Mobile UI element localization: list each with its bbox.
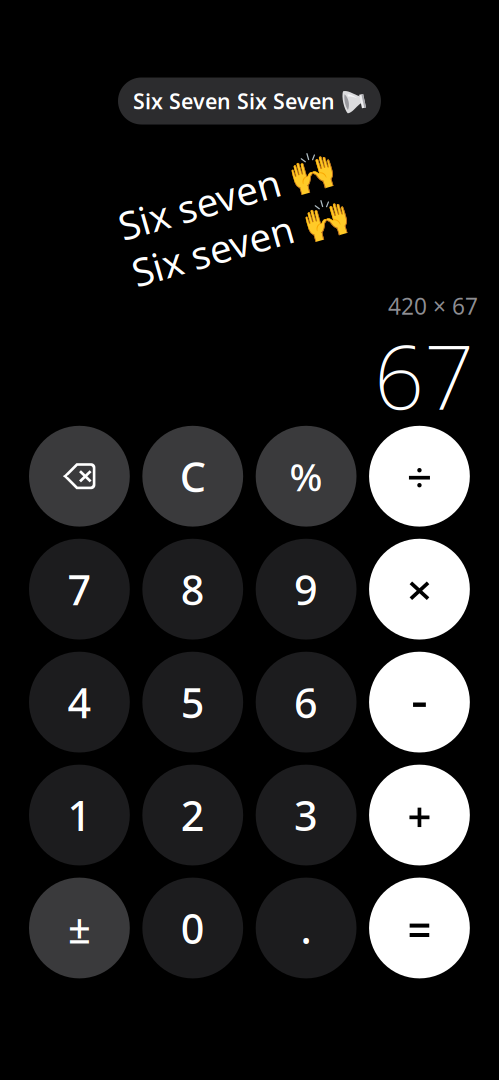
staticText: Six seven 🙌: [121, 217, 346, 269]
staticText: Six seven 🙌: [121, 169, 346, 220]
staticText: 9: [294, 562, 318, 617]
button[interactable]: 6: [256, 652, 356, 752]
button[interactable]: 3: [256, 765, 356, 865]
button[interactable]: Divide: [369, 426, 470, 527]
staticText: .: [301, 901, 312, 955]
staticText: 8: [181, 562, 205, 617]
button[interactable]: 5: [142, 652, 243, 752]
staticText: Six Seven Six Seven: [133, 87, 335, 115]
button[interactable]: C: [142, 426, 243, 527]
staticText: 7: [67, 562, 91, 617]
staticText: 3: [294, 788, 318, 842]
staticText: 0: [181, 901, 205, 955]
staticText: %: [290, 450, 323, 502]
staticText: C: [180, 449, 206, 504]
button[interactable]: Multiply: [369, 539, 470, 640]
button[interactable]: 2: [142, 765, 243, 865]
button[interactable]: %: [256, 426, 356, 527]
staticText: ±: [68, 901, 91, 954]
staticText: 1: [67, 788, 91, 842]
staticText: 6: [294, 675, 318, 730]
button[interactable]: Minus: [369, 652, 470, 752]
button[interactable]: 8: [142, 539, 243, 640]
staticText: 2: [181, 788, 205, 842]
button[interactable]: 9: [256, 539, 356, 640]
button[interactable]: Delete: [29, 426, 130, 527]
button[interactable]: ±: [29, 878, 130, 978]
button[interactable]: 1: [29, 765, 130, 865]
button[interactable]: 7: [29, 539, 130, 640]
staticText: 5: [181, 675, 205, 730]
staticText: 420 × 67: [388, 291, 478, 321]
button[interactable]: 4: [29, 652, 130, 752]
button[interactable]: Equals: [369, 878, 470, 978]
button[interactable]: Six Seven Six Seven: [118, 77, 381, 124]
staticText: 67: [374, 317, 474, 433]
button[interactable]: 0: [142, 878, 243, 978]
staticText: 4: [67, 675, 91, 730]
button[interactable]: .: [256, 878, 356, 978]
button[interactable]: Plus: [369, 765, 470, 865]
